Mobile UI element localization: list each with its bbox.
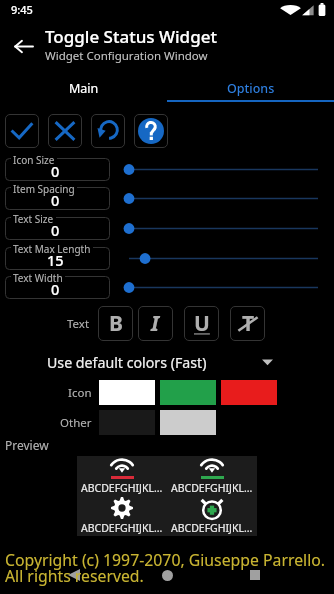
button[interactable]: Use default colors (Fast) <box>0 352 334 372</box>
staticText: Text <box>67 316 90 332</box>
button[interactable]: Reset <box>91 114 125 148</box>
staticText: Options <box>227 80 275 97</box>
button[interactable] <box>129 252 318 265</box>
staticText: B <box>109 309 123 338</box>
staticText: Toggle Status Widget <box>45 25 217 48</box>
staticText: Item Spacing <box>13 182 75 196</box>
staticText: ABCDEFGHIJKL... <box>81 481 163 495</box>
staticText: 0 <box>51 190 60 210</box>
staticText: 9:45 <box>11 2 33 17</box>
staticText: 0 <box>51 161 60 181</box>
staticText: I <box>151 309 160 338</box>
staticText: Copyright (c) 1997-2070, Giuseppe Parrel… <box>5 549 326 571</box>
button[interactable]: ABCDEFGHIJKL... <box>167 456 257 496</box>
button[interactable] <box>129 192 318 205</box>
staticText: Text Size <box>13 212 54 226</box>
button[interactable]: Help <box>134 114 168 148</box>
staticText: ABCDEFGHIJKL... <box>81 521 163 535</box>
button[interactable]: Main <box>0 73 167 102</box>
staticText: 15 <box>47 250 64 270</box>
button[interactable]: 0 <box>5 276 110 299</box>
button[interactable]: Recents <box>237 562 273 588</box>
button[interactable]: 0 <box>5 217 110 240</box>
staticText: Main <box>69 80 99 97</box>
button[interactable]: 0 <box>5 187 110 210</box>
staticText: Icon <box>68 385 92 401</box>
button[interactable] <box>129 222 318 235</box>
staticText: Use default colors (Fast) <box>47 353 207 372</box>
button[interactable]: Back <box>56 562 92 588</box>
button[interactable] <box>129 163 318 176</box>
staticText: Widget Configuration Window <box>45 48 208 64</box>
button[interactable]: Underline <box>184 306 219 341</box>
staticText: ABCDEFGHIJKL... <box>171 521 253 535</box>
staticText: Preview <box>5 437 49 453</box>
staticText: ABCDEFGHIJKL... <box>171 481 253 495</box>
button[interactable]: Italic <box>138 306 173 341</box>
staticText: T <box>242 309 255 338</box>
button[interactable]: ABCDEFGHIJKL... <box>167 496 257 536</box>
button[interactable]: Options <box>167 73 334 102</box>
staticText: Icon Size <box>13 153 55 167</box>
staticText: Text Width <box>13 271 63 285</box>
button[interactable]: Apply <box>5 114 39 148</box>
staticText: U <box>194 309 210 338</box>
staticText: All rights reserved. <box>5 565 144 587</box>
button[interactable]: ABCDEFGHIJKL... <box>77 456 167 496</box>
button[interactable]: Back <box>4 27 42 65</box>
staticText: Other <box>60 415 92 431</box>
button[interactable]: Home <box>149 562 185 588</box>
button[interactable]: 15 <box>5 247 110 270</box>
button[interactable]: Cancel <box>48 114 82 148</box>
button[interactable]: ABCDEFGHIJKL... <box>77 496 167 536</box>
button[interactable] <box>129 281 318 294</box>
button[interactable]: Strikethrough <box>230 306 265 341</box>
button[interactable]: Bold <box>98 306 133 341</box>
staticText: 0 <box>51 279 60 299</box>
button[interactable]: 0 <box>5 158 110 181</box>
staticText: Text Max Length <box>13 242 91 256</box>
staticText: 0 <box>51 220 60 240</box>
